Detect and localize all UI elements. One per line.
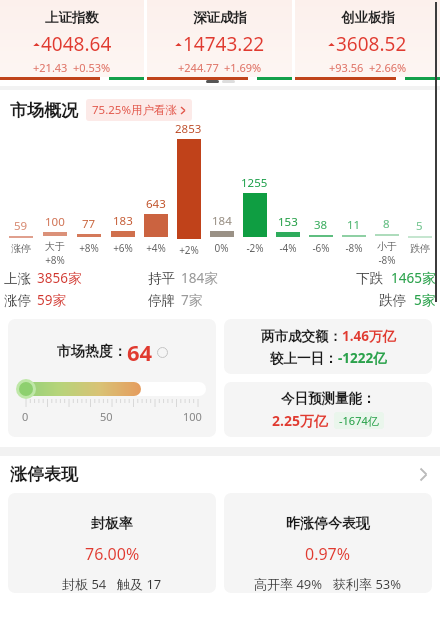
- staticText: 0.97%: [305, 543, 351, 565]
- staticText: 涨停表现: [10, 464, 78, 485]
- staticText: 昨涨停今表现: [286, 515, 370, 533]
- button[interactable]: 75.25%用户看涨: [86, 99, 192, 121]
- other: 更多: [419, 467, 428, 482]
- staticText: 两市成交额：: [261, 328, 342, 345]
- staticText: 上涨: [4, 270, 31, 287]
- staticText: 8: [383, 216, 390, 232]
- staticText: +2.66%: [369, 60, 407, 75]
- staticText: 下跌: [356, 270, 383, 287]
- staticText: 3608.52: [336, 31, 407, 57]
- button[interactable]: 昨涨停今表现: [224, 493, 432, 593]
- staticText: 市场概况: [10, 100, 78, 121]
- staticText: 64: [127, 337, 153, 367]
- staticText: +21.43: [33, 60, 68, 75]
- button[interactable]: 今日预测量能：: [224, 382, 432, 437]
- staticText: 市场热度：: [57, 343, 127, 361]
- staticText: 50: [100, 409, 113, 424]
- staticText: 触及 17: [117, 575, 162, 593]
- staticText: 1255: [241, 175, 268, 191]
- staticText: 11: [347, 217, 361, 233]
- staticText: 2.25万亿: [272, 411, 328, 430]
- staticText: +93.56: [329, 60, 364, 75]
- staticText: 0: [22, 409, 29, 424]
- staticText: 5: [416, 218, 423, 234]
- staticText: 停牌: [148, 292, 175, 309]
- staticText: 封板率: [91, 515, 133, 533]
- staticText: +8%: [45, 253, 65, 267]
- staticText: 持平: [148, 270, 175, 287]
- staticText: 创业板指: [341, 9, 395, 26]
- staticText: 643: [146, 196, 166, 212]
- staticText: 小于: [377, 240, 397, 253]
- staticText: 涨停: [4, 292, 31, 309]
- button[interactable]: 市场热度：: [8, 319, 216, 437]
- button[interactable]: 封板率: [8, 493, 216, 593]
- staticText: 183: [113, 213, 133, 229]
- staticText: 4048.64: [41, 31, 112, 57]
- staticText: 大于: [45, 240, 65, 253]
- staticText: 38: [314, 217, 328, 233]
- staticText: 3856家: [37, 269, 82, 287]
- staticText: 100: [183, 409, 202, 424]
- staticText: -1674亿: [339, 413, 379, 428]
- staticText: 184: [212, 213, 232, 229]
- staticText: 0%: [214, 241, 229, 255]
- staticText: +0.53%: [73, 60, 111, 75]
- staticText: +1.69%: [224, 60, 262, 75]
- staticText: -8%: [345, 241, 363, 255]
- staticText: +244.77: [178, 60, 219, 75]
- staticText: 75.25%用户看涨: [92, 102, 177, 118]
- staticText: 今日预测量能：: [281, 390, 376, 407]
- staticText: 高开率 49%: [254, 575, 323, 593]
- staticText: +6%: [113, 241, 133, 255]
- staticText: 7家: [181, 291, 203, 309]
- staticText: 59: [14, 218, 28, 234]
- staticText: 1.46万亿: [342, 327, 396, 345]
- button[interactable]: 两市成交额：: [224, 319, 432, 374]
- staticText: -4%: [279, 241, 297, 255]
- staticText: 76.00%: [85, 543, 140, 565]
- staticText: +4%: [146, 241, 166, 255]
- staticText: -2%: [246, 241, 264, 255]
- button[interactable]: 创业板指: [295, 0, 440, 80]
- staticText: 77: [82, 216, 96, 232]
- staticText: +2%: [179, 243, 199, 257]
- staticText: 1465家: [391, 269, 436, 287]
- button[interactable]: 涨停表现: [0, 464, 440, 485]
- staticText: 5家: [414, 291, 436, 309]
- staticText: 深证成指: [193, 9, 247, 26]
- staticText: 184家: [181, 269, 218, 287]
- staticText: -6%: [312, 241, 330, 255]
- staticText: 2853: [175, 121, 202, 137]
- button[interactable]: 上证指数: [0, 0, 144, 80]
- staticText: 封板 54: [62, 575, 107, 593]
- button[interactable]: 深证成指: [147, 0, 292, 80]
- staticText: 100: [45, 214, 65, 230]
- staticText: 153: [278, 214, 298, 230]
- staticText: 59家: [37, 291, 66, 309]
- staticText: 上证指数: [45, 9, 99, 26]
- staticText: -1222亿: [338, 349, 387, 367]
- staticText: 14743.22: [183, 31, 265, 57]
- staticText: 跌停: [379, 292, 406, 309]
- staticText: 较上一日：: [270, 350, 338, 367]
- staticText: 涨停: [11, 242, 31, 255]
- staticText: +8%: [79, 241, 99, 255]
- staticText: -8%: [378, 253, 396, 267]
- staticText: 获利率 53%: [333, 575, 402, 593]
- staticText: 跌停: [410, 242, 430, 255]
